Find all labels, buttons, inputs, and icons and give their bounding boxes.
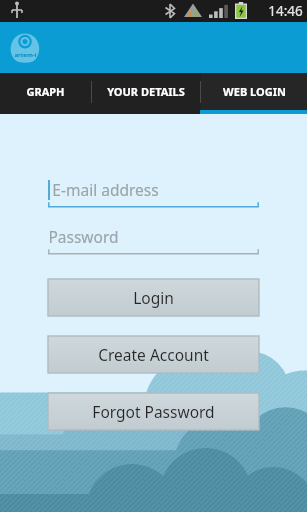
staticText: Forgot Password xyxy=(92,401,215,422)
staticText: Login xyxy=(133,287,174,308)
button[interactable]: Password xyxy=(48,224,259,255)
staticText: E-mail address xyxy=(52,179,159,200)
staticText: artem-i xyxy=(14,51,37,59)
button[interactable]: artem-i home xyxy=(8,32,42,64)
button[interactable]: WEB LOGIN xyxy=(201,73,307,110)
staticText: WEB LOGIN xyxy=(223,84,286,99)
button[interactable]: E-mail address xyxy=(48,177,259,208)
button[interactable]: Forgot Password xyxy=(48,393,259,430)
staticText: YOUR DETAILS xyxy=(107,84,185,99)
button[interactable]: Create Account xyxy=(48,336,259,373)
button[interactable]: YOUR DETAILS xyxy=(92,73,200,110)
button[interactable]: Login xyxy=(48,279,259,316)
staticText: Create Account xyxy=(98,344,209,365)
staticText: GRAPH xyxy=(26,84,65,99)
staticText: Password xyxy=(48,226,119,247)
staticText: 14:46 xyxy=(268,2,303,20)
button[interactable]: GRAPH xyxy=(0,73,91,110)
